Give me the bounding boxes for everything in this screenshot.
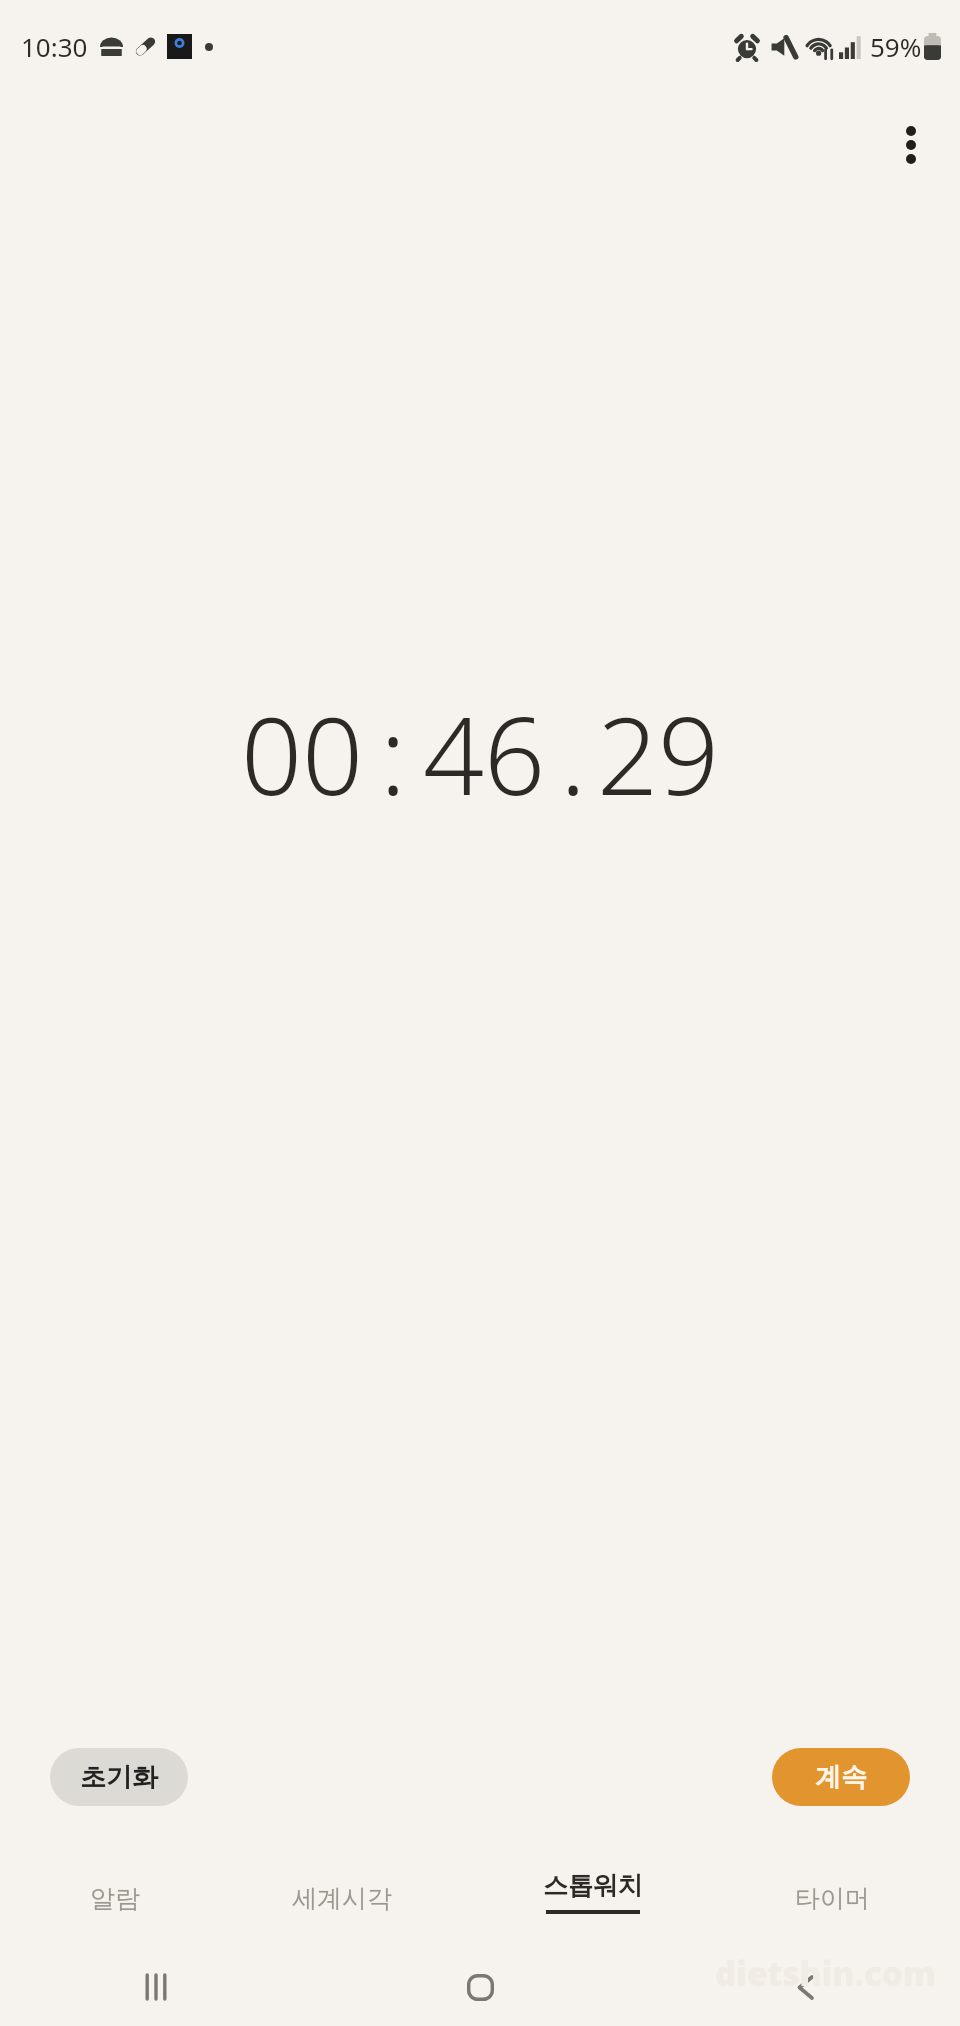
staticText: 알람 (90, 1883, 140, 1914)
staticText: 46 (423, 681, 546, 827)
staticText: 스톱워치 (543, 1870, 643, 1901)
button[interactable]: Home (450, 1957, 510, 2017)
button[interactable]: Recent apps (128, 1959, 184, 2015)
button[interactable]: 세계시각 (280, 1875, 404, 1922)
staticText: 29 (597, 681, 720, 827)
staticText: 00 (241, 681, 364, 827)
button[interactable]: 타이머 (783, 1875, 882, 1922)
staticText: 10:30 (21, 29, 88, 64)
staticText: 타이머 (795, 1883, 870, 1914)
staticText: 계속 (815, 1761, 867, 1794)
staticText: . (560, 681, 587, 827)
button[interactable]: 스톱워치 (531, 1862, 655, 1922)
button[interactable]: 계속 (772, 1748, 910, 1806)
staticText: : (380, 681, 407, 827)
button[interactable]: 알람 (78, 1875, 152, 1922)
staticText: 59% (870, 29, 922, 64)
staticText: 세계시각 (292, 1883, 392, 1914)
button[interactable]: 초기화 (50, 1748, 188, 1806)
staticText: 초기화 (80, 1761, 158, 1794)
button[interactable]: More options (882, 116, 940, 174)
staticText: dietshin.com (715, 1951, 936, 1996)
button[interactable]: Back (778, 1959, 834, 2015)
